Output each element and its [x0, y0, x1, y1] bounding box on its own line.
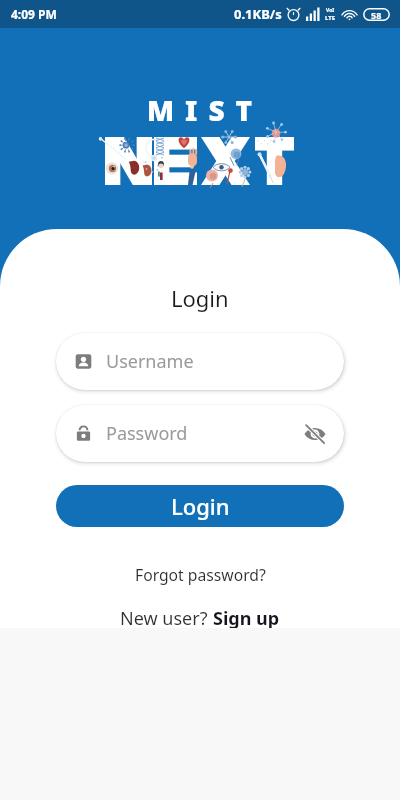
- button[interactable]: Username: [56, 333, 344, 390]
- button[interactable]: Sign up: [213, 606, 280, 628]
- staticText: Sign up: [213, 606, 280, 628]
- staticText: Password: [106, 421, 188, 446]
- button[interactable]: Forgot password?: [121, 559, 280, 590]
- staticText: VoI: [326, 7, 335, 14]
- button[interactable]: Login: [56, 485, 344, 527]
- staticText: New user?: [120, 606, 213, 628]
- button[interactable]: Password: [56, 405, 344, 462]
- staticText: Login: [171, 283, 229, 313]
- staticText: Forgot password?: [135, 564, 266, 585]
- staticText: Username: [106, 349, 194, 374]
- staticText: 4:09 PM: [11, 6, 57, 22]
- button[interactable]: Show password: [303, 422, 327, 446]
- staticText: 0.1KB/s: [234, 5, 282, 23]
- staticText: MIST: [147, 91, 264, 129]
- staticText: 58: [371, 9, 382, 21]
- staticText: Login: [171, 491, 230, 521]
- staticText: LTE: [325, 14, 336, 22]
